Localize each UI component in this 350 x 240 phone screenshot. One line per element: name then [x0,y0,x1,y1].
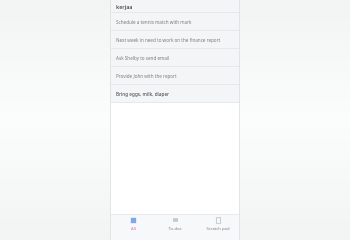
staticText: Scratch pad [206,226,230,232]
button[interactable]: Provide John with the report [110,67,240,84]
staticText: Schedule a tennis match with mark [116,19,192,25]
button[interactable]: Next week in need to work on the finance… [110,31,240,48]
staticText: Next week in need to work on the finance… [116,37,221,43]
staticText: Ask Shelby to send email [116,55,170,61]
staticText: Provide John with the report [116,73,177,79]
staticText: All [131,226,136,232]
staticText: To-dos [168,226,182,232]
button[interactable]: kerjaa [110,0,240,12]
button[interactable]: Scratch pad [198,217,238,232]
staticText: kerjaa [116,3,133,10]
button[interactable]: Ask Shelby to send email [110,49,240,66]
button[interactable]: Bring eggs, milk, diaper [110,85,240,102]
staticText: Bring eggs, milk, diaper [116,91,170,97]
button[interactable]: To-dos [155,217,195,232]
button[interactable]: Schedule a tennis match with mark [110,13,240,30]
button[interactable]: All [113,217,153,232]
